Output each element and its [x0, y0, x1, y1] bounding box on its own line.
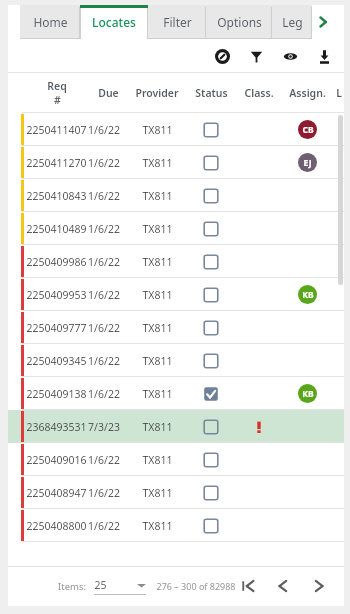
staticText: TX811: [142, 156, 173, 170]
staticText: TX811: [142, 519, 173, 533]
staticText: 1/6/22: [88, 156, 120, 170]
staticText: 2250411270: [26, 156, 87, 170]
staticText: 25: [94, 578, 107, 592]
button[interactable]: 2250409777: [8, 311, 344, 344]
staticText: 1/6/22: [88, 519, 120, 533]
button[interactable]: Status checkbox: [203, 122, 219, 138]
button[interactable]: Status checkbox: [203, 155, 219, 171]
staticText: TX811: [142, 222, 173, 236]
button[interactable]: 2250409138: [8, 377, 344, 410]
staticText: Req: [47, 79, 67, 93]
button[interactable]: 2250409345: [8, 344, 344, 377]
staticText: 1/6/22: [88, 354, 120, 368]
staticText: TX811: [142, 486, 173, 500]
button[interactable]: Options: [206, 5, 272, 39]
button[interactable]: 2250410489: [8, 212, 344, 245]
button[interactable]: Status checkbox: [203, 419, 219, 435]
staticText: 1/6/22: [88, 189, 120, 203]
button[interactable]: Status checkbox: [203, 353, 219, 369]
button[interactable]: Status checkbox: [203, 188, 219, 204]
button[interactable]: Next page: [308, 575, 330, 597]
staticText: 2368493531: [26, 420, 87, 434]
staticText: Class.: [244, 86, 274, 100]
staticText: Options: [217, 14, 262, 30]
button[interactable]: Filter: [148, 5, 206, 39]
staticText: 1/6/22: [88, 453, 120, 467]
button[interactable]: Previous page: [272, 575, 294, 597]
staticText: 7/3/23: [88, 420, 120, 434]
staticText: TX811: [142, 255, 173, 269]
staticText: TX811: [142, 321, 173, 335]
button[interactable]: Locates: [80, 5, 148, 39]
button[interactable]: Status checkbox: [203, 386, 219, 402]
button[interactable]: 2250409953: [8, 278, 344, 311]
button[interactable]: Status checkbox: [203, 518, 219, 534]
button[interactable]: First page: [238, 575, 260, 597]
button[interactable]: 2368493531: [8, 410, 344, 443]
staticText: EJ: [303, 157, 312, 169]
staticText: 2250410489: [26, 222, 87, 236]
staticText: 276 – 300 of 82988: [156, 580, 236, 592]
staticText: 2250411407: [26, 123, 87, 137]
button[interactable]: 2250410843: [8, 179, 344, 212]
staticText: TX811: [142, 354, 173, 368]
button[interactable]: Status checkbox: [203, 221, 219, 237]
button[interactable]: Leg: [272, 5, 312, 39]
button[interactable]: Status checkbox: [203, 254, 219, 270]
staticText: 2250409138: [26, 387, 87, 401]
staticText: 2250409953: [26, 288, 87, 302]
staticText: 1/6/22: [88, 255, 120, 269]
button[interactable]: 2250408800: [8, 509, 344, 542]
button[interactable]: More tabs: [312, 5, 334, 39]
staticText: KB: [302, 289, 314, 301]
staticText: L: [336, 86, 342, 100]
button[interactable]: 2250409986: [8, 245, 344, 278]
button[interactable]: Status checkbox: [203, 485, 219, 501]
staticText: TX811: [142, 453, 173, 467]
staticText: 2250409777: [26, 321, 87, 335]
button[interactable]: Download: [314, 46, 334, 66]
staticText: 1/6/22: [88, 387, 120, 401]
staticText: 2250409016: [26, 453, 87, 467]
button[interactable]: 2250411270: [8, 146, 344, 179]
staticText: CB: [302, 124, 314, 136]
button[interactable]: Show columns: [280, 46, 300, 66]
button[interactable]: Navigate: [212, 46, 232, 66]
staticText: Home: [33, 14, 68, 30]
button[interactable]: Home: [20, 5, 80, 39]
staticText: Status: [195, 86, 228, 100]
staticText: 1/6/22: [88, 288, 120, 302]
staticText: TX811: [142, 123, 173, 137]
staticText: TX811: [142, 387, 173, 401]
staticText: #: [54, 93, 61, 107]
button[interactable]: 2250411407: [8, 113, 344, 146]
button[interactable]: 2250409016: [8, 443, 344, 476]
button[interactable]: 2250408947: [8, 476, 344, 509]
staticText: 2250409345: [26, 354, 87, 368]
button[interactable]: Filter: [246, 46, 266, 66]
staticText: TX811: [142, 420, 173, 434]
staticText: 1/6/22: [88, 321, 120, 335]
staticText: TX811: [142, 288, 173, 302]
staticText: 2250410843: [26, 189, 87, 203]
button[interactable]: 25: [94, 578, 146, 595]
staticText: Provider: [135, 86, 179, 100]
staticText: Assign.: [289, 86, 326, 100]
staticText: TX811: [142, 189, 173, 203]
staticText: KB: [302, 388, 314, 400]
staticText: 1/6/22: [88, 123, 120, 137]
button[interactable]: Status checkbox: [203, 287, 219, 303]
staticText: Due: [98, 86, 119, 100]
staticText: Locates: [92, 14, 136, 30]
staticText: 2250409986: [26, 255, 87, 269]
staticText: 1/6/22: [88, 486, 120, 500]
button[interactable]: Status checkbox: [203, 320, 219, 336]
staticText: 2250408800: [26, 519, 87, 533]
staticText: 1/6/22: [88, 222, 120, 236]
staticText: Items:: [58, 580, 86, 593]
staticText: Leg: [282, 14, 303, 30]
button[interactable]: Status checkbox: [203, 452, 219, 468]
staticText: Filter: [163, 14, 192, 30]
staticText: 2250408947: [26, 486, 87, 500]
